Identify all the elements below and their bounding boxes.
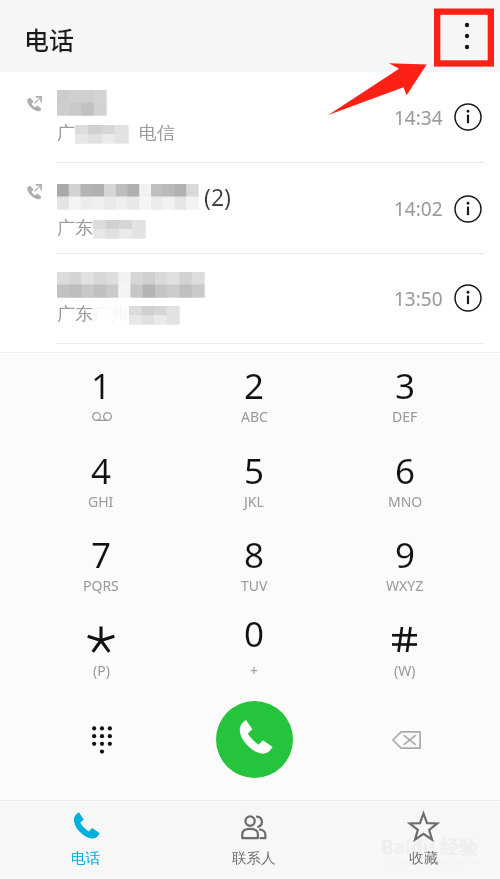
staticText: (2) bbox=[204, 181, 231, 212]
button[interactable]: Keypad bbox=[72, 715, 132, 765]
button[interactable]: Call bbox=[216, 701, 293, 778]
staticText: 14:34 bbox=[394, 105, 443, 131]
staticText: 6 bbox=[395, 447, 416, 495]
staticText: 广东 bbox=[57, 303, 93, 326]
button[interactable]: 电话 bbox=[27, 806, 143, 876]
button[interactable]: More options bbox=[434, 0, 500, 72]
button[interactable] bbox=[194, 527, 314, 605]
staticText: 0 bbox=[244, 610, 265, 658]
button[interactable] bbox=[345, 358, 465, 436]
staticText: 电话 bbox=[24, 21, 75, 57]
button[interactable]: Call details bbox=[454, 103, 482, 131]
button[interactable]: Call details bbox=[454, 284, 482, 312]
staticText: DEF bbox=[392, 407, 418, 426]
button[interactable] bbox=[41, 358, 161, 436]
button[interactable]: Call details bbox=[454, 195, 482, 223]
staticText: ABC bbox=[241, 407, 268, 426]
button[interactable] bbox=[345, 443, 465, 521]
staticText: 2 bbox=[244, 362, 265, 410]
button[interactable]: 联系人 bbox=[196, 806, 312, 876]
staticText: 广 bbox=[57, 122, 75, 145]
staticText: 8 bbox=[244, 531, 265, 579]
button[interactable] bbox=[194, 607, 314, 685]
staticText: 联系人 bbox=[232, 849, 276, 867]
staticText: 4 bbox=[91, 447, 112, 495]
button[interactable]: Backspace bbox=[376, 715, 436, 765]
staticText: JKL bbox=[244, 492, 264, 511]
staticText: MNO bbox=[388, 492, 423, 511]
button[interactable]: 广 bbox=[0, 72, 500, 162]
staticText: 14:02 bbox=[394, 196, 443, 222]
button[interactable] bbox=[345, 527, 465, 605]
button[interactable] bbox=[41, 527, 161, 605]
staticText: GHI bbox=[88, 492, 114, 511]
staticText: (P) bbox=[93, 661, 110, 680]
button[interactable] bbox=[345, 607, 465, 685]
staticText: 收藏 bbox=[409, 849, 438, 867]
staticText: jingyan.baidu.com bbox=[383, 853, 479, 868]
staticText: 1 bbox=[91, 362, 112, 410]
button[interactable]: (2) bbox=[0, 162, 500, 254]
staticText: 5 bbox=[244, 447, 265, 495]
staticText: PQRS bbox=[83, 576, 119, 595]
staticText: Baidu 经验 bbox=[381, 834, 478, 860]
staticText: (W) bbox=[394, 661, 416, 680]
button[interactable] bbox=[41, 443, 161, 521]
staticText: 7 bbox=[91, 531, 112, 579]
staticText: 13:50 bbox=[394, 286, 443, 312]
staticText: WXYZ bbox=[386, 576, 424, 595]
staticText: 电信 bbox=[139, 122, 175, 145]
button[interactable]: 广东 bbox=[0, 253, 500, 343]
button[interactable] bbox=[194, 358, 314, 436]
staticText: 3 bbox=[395, 362, 416, 410]
staticText: TUV bbox=[241, 576, 268, 595]
staticText: 电话 bbox=[71, 849, 100, 867]
staticText: 9 bbox=[395, 531, 416, 579]
staticText: + bbox=[250, 661, 259, 680]
staticText: 广东 bbox=[57, 217, 93, 240]
button[interactable]: 收藏 bbox=[365, 806, 481, 876]
button[interactable] bbox=[41, 607, 161, 685]
button[interactable] bbox=[194, 443, 314, 521]
